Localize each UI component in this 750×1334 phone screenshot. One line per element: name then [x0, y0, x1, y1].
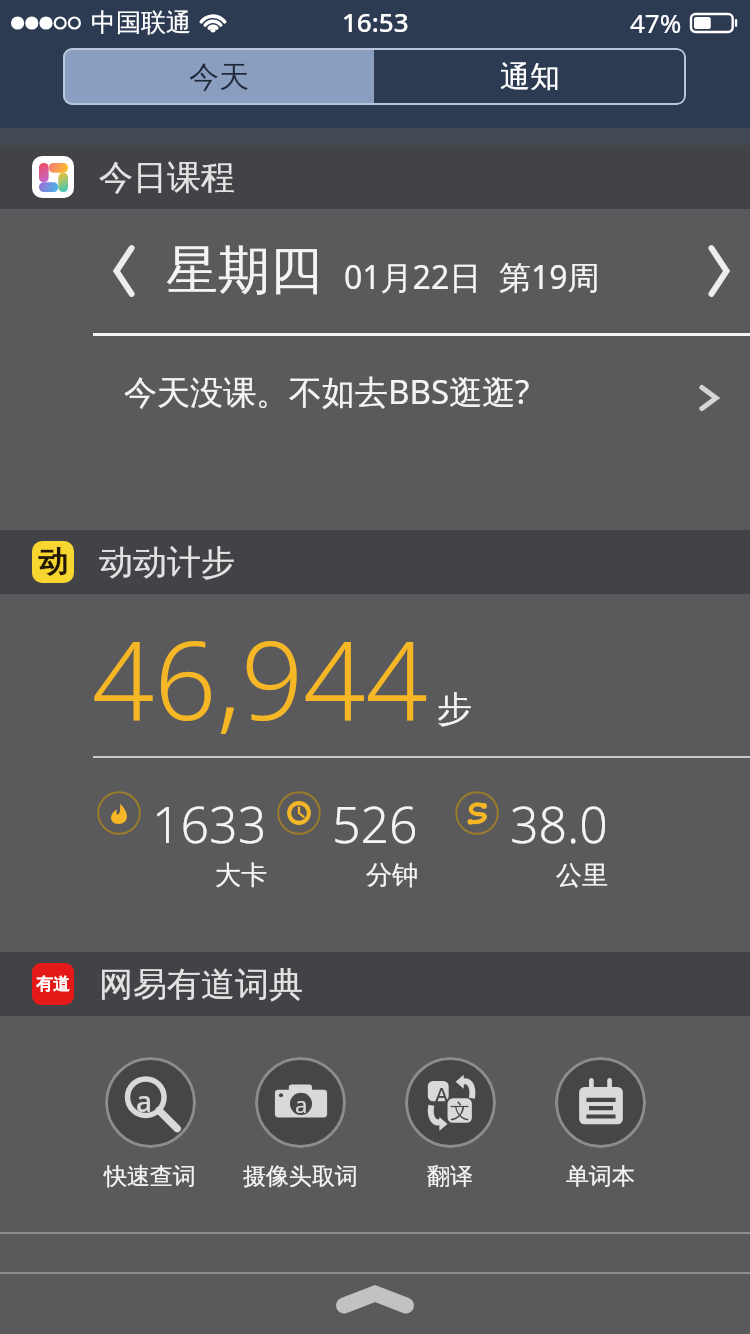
button[interactable]: A [375, 1057, 525, 1191]
staticText: 动 [38, 543, 68, 581]
button[interactable]: 今天没课。不如去BBS逛逛? [0, 336, 750, 459]
staticText: 摄像头取词 [243, 1162, 358, 1191]
staticText: 第19周 [499, 255, 600, 299]
staticText: 动动计步 [99, 541, 235, 584]
button[interactable]: 今日课程 [0, 145, 750, 209]
staticText: 公里 [556, 859, 608, 892]
staticText: 46,944 [92, 603, 428, 751]
staticText: A [435, 1081, 449, 1108]
other: Close [336, 1288, 414, 1313]
staticText: 16:53 [342, 4, 409, 39]
staticText: 今天没课。不如去BBS逛逛? [124, 369, 530, 414]
staticText: 今日课程 [99, 156, 235, 199]
staticText: 526 [332, 790, 418, 858]
staticText: 分钟 [366, 859, 418, 892]
button[interactable]: a [75, 1057, 225, 1191]
staticText: 通知 [500, 58, 560, 96]
staticText: 大卡 [215, 859, 267, 892]
staticText: 今天 [189, 58, 249, 96]
button[interactable]: 通知 [374, 48, 686, 105]
button[interactable]: Previous day [97, 244, 151, 298]
staticText: 快速查词 [104, 1162, 196, 1191]
staticText: 步 [437, 687, 472, 731]
button[interactable]: Next day [692, 244, 746, 298]
staticText: 网易有道词典 [99, 963, 303, 1006]
button[interactable]: 有道 [0, 952, 750, 1016]
staticText: 1633 [152, 790, 267, 858]
staticText: 01月22日 [344, 255, 482, 299]
staticText: 有道 [36, 974, 70, 995]
staticText: 翻译 [427, 1162, 473, 1191]
staticText: 单词本 [566, 1162, 635, 1191]
staticText: a [136, 1082, 153, 1120]
staticText: 星期四 [166, 238, 322, 304]
button[interactable]: a [225, 1057, 375, 1191]
staticText: 中国联通 [91, 7, 191, 38]
staticText: a [295, 1089, 308, 1119]
staticText: 38.0 [510, 790, 608, 858]
button[interactable]: 单词本 [525, 1057, 675, 1191]
staticText: 47% [630, 5, 682, 40]
staticText: 文 [450, 1099, 470, 1124]
button[interactable]: 动 [0, 530, 750, 594]
button[interactable]: 今天 [63, 48, 374, 105]
